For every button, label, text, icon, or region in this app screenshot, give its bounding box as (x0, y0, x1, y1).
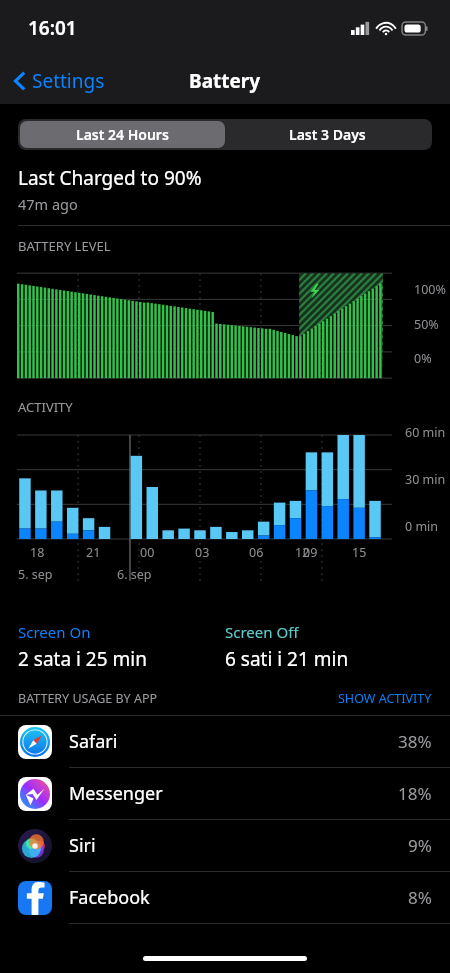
staticText: SHOW ACTIVITY (338, 690, 432, 707)
staticText: Screen Off (225, 622, 299, 642)
button[interactable]: Siri (0, 820, 450, 872)
staticText: 16:01 (28, 15, 77, 41)
button[interactable]: Last 3 Days (225, 121, 430, 148)
staticText: 38% (398, 730, 432, 753)
staticText: 0 min (405, 518, 439, 535)
staticText: 6. sep (117, 566, 152, 583)
staticText: 60 min (405, 424, 446, 441)
staticText: 100% (414, 281, 446, 298)
staticText: Safari (69, 729, 118, 754)
staticText: Last 3 Days (289, 125, 366, 144)
staticText: 9% (408, 834, 432, 857)
staticText: Settings (32, 68, 105, 94)
staticText: Screen On (18, 622, 91, 642)
staticText: 6 sati i 21 min (225, 646, 349, 672)
button[interactable]: Last 24 Hours (20, 121, 225, 148)
staticText: 47m ago (18, 194, 78, 214)
staticText: 15 (352, 544, 367, 561)
staticText: ACTIVITY (18, 398, 73, 416)
staticText: Last Charged to 90% (18, 165, 202, 191)
button[interactable]: SHOW ACTIVITY (338, 690, 432, 707)
staticText: 2 sata i 25 min (18, 646, 147, 672)
staticText: 21 (86, 544, 101, 561)
staticText: 50% (414, 316, 439, 333)
staticText: BATTERY USAGE BY APP (18, 690, 158, 707)
button[interactable]: Messenger (0, 768, 450, 820)
staticText: Last 24 Hours (76, 125, 169, 144)
staticText: Messenger (69, 781, 163, 806)
staticText: 8% (408, 886, 432, 909)
staticText: Facebook (69, 885, 150, 910)
staticText: 09 (303, 544, 318, 561)
button[interactable]: Safari (0, 716, 450, 768)
button[interactable]: Settings (8, 62, 111, 100)
staticText: 30 min (405, 471, 446, 488)
staticText: 18% (398, 782, 432, 805)
staticText: Battery (189, 68, 261, 94)
staticText: 12 (295, 544, 310, 561)
button[interactable]: Facebook (0, 872, 450, 924)
staticText: Siri (69, 833, 96, 858)
staticText: 03 (195, 544, 210, 561)
staticText: 00 (140, 544, 155, 561)
staticText: 18 (30, 544, 45, 561)
staticText: 0% (414, 350, 432, 367)
staticText: 5. sep (18, 566, 53, 583)
staticText: 06 (249, 544, 264, 561)
staticText: BATTERY LEVEL (18, 237, 111, 255)
